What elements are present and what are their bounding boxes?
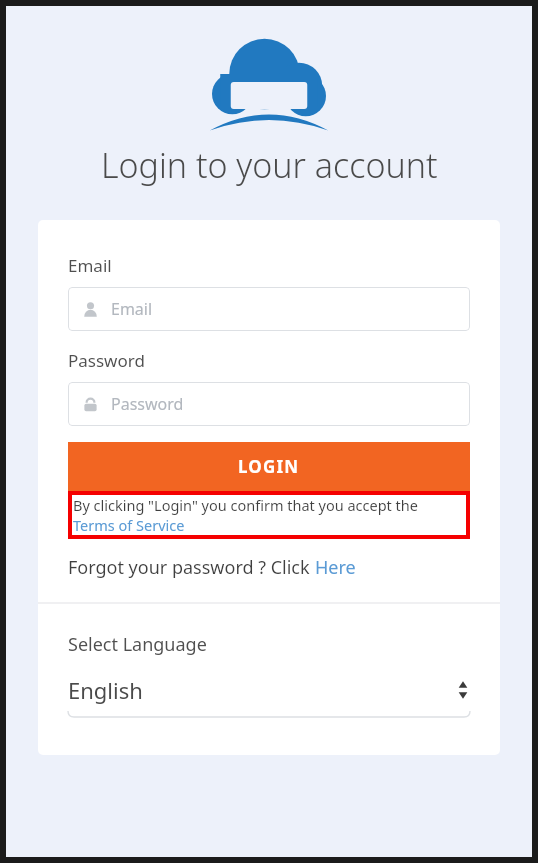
staticText: English <box>68 675 143 705</box>
button[interactable]: LOGIN <box>68 442 470 491</box>
staticText: LOGIN <box>238 455 300 478</box>
button[interactable]: Forgot your password ? Click <box>68 555 356 580</box>
staticText: Password <box>68 349 145 372</box>
staticText: Select Language <box>68 632 207 657</box>
staticText: By clicking "Login" you confirm that you… <box>73 495 418 515</box>
button[interactable]: Email <box>68 287 470 331</box>
button[interactable]: English <box>68 675 470 717</box>
staticText: Email <box>68 254 112 277</box>
staticText: Email <box>111 298 153 320</box>
staticText: Forgot your password ? Click <box>68 555 315 580</box>
staticText: Terms of Service <box>73 515 185 535</box>
other: Change language <box>456 679 470 701</box>
staticText: Password <box>111 393 184 415</box>
staticText: Here <box>315 555 356 580</box>
button[interactable]: Password <box>68 382 470 426</box>
button[interactable]: Terms of Service <box>73 515 185 535</box>
staticText: Login to your account <box>101 142 438 188</box>
